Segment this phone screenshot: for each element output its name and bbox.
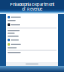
staticText: Philadelphia Department xyxy=(10,2,54,7)
staticText: of Revenue xyxy=(22,7,42,12)
